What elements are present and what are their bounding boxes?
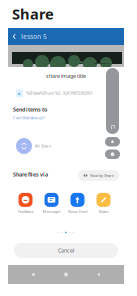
button[interactable]: Notes — [93, 193, 114, 214]
staticText: share image title — [46, 72, 86, 80]
button[interactable]: Mi Share — [8, 67, 68, 83]
button[interactable]: Ringer mode — [105, 137, 120, 146]
button[interactable]: Messages — [41, 193, 62, 214]
button[interactable]: Nearby Share — [78, 170, 119, 181]
button[interactable]: News Feed — [67, 193, 88, 214]
staticText: Mi Share — [35, 143, 51, 149]
staticText: Messages — [42, 209, 60, 214]
staticText: Send items to — [13, 106, 47, 113]
button[interactable]: Home — [59, 267, 73, 281]
staticText: Cancel — [58, 247, 74, 254]
staticText: Share — [12, 4, 54, 23]
button[interactable]: Back — [91, 267, 105, 281]
staticText: Share files via — [13, 171, 48, 178]
staticText: lesson 5 — [21, 32, 47, 41]
staticText: News Feed — [68, 209, 87, 214]
button[interactable]: Do not disturb — [105, 149, 120, 159]
button[interactable]: Feedback — [15, 193, 36, 214]
staticText: Feedback — [17, 209, 33, 214]
staticText: Can't find devices? — [13, 115, 45, 120]
staticText: %2Fdata%2Fuser%2…%2F39872302953 — [26, 90, 92, 96]
staticText: Nearby Share — [90, 173, 114, 178]
staticText: Notes — [98, 209, 108, 214]
button[interactable]: Back — [8, 28, 21, 45]
button[interactable]: Recents — [26, 267, 40, 281]
button[interactable]: Cancel — [14, 243, 118, 258]
